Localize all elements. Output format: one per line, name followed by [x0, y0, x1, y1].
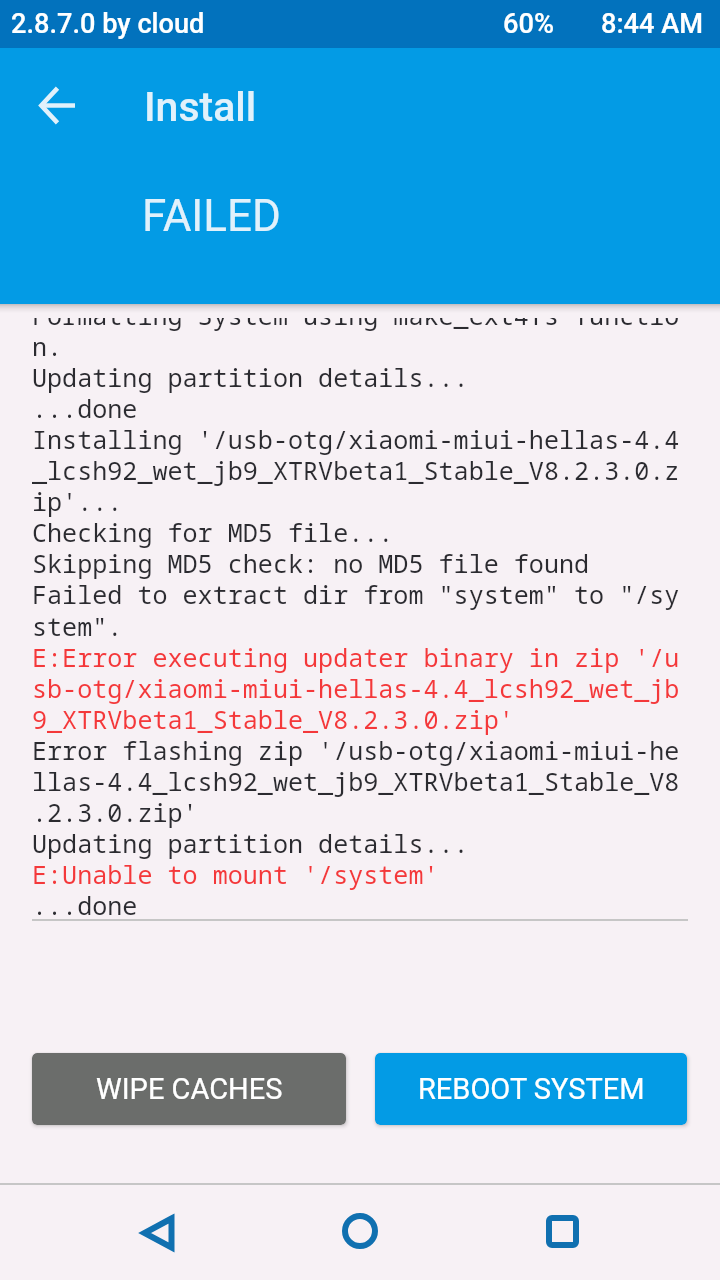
button[interactable]: Back: [110, 1185, 206, 1280]
staticText: ...done: [32, 391, 138, 425]
staticText: Error flashing zip '/usb-otg/xiaomi-miui…: [32, 733, 680, 767]
staticText: 60%: [503, 8, 554, 40]
staticText: ip'...: [32, 484, 123, 518]
staticText: Updating partition details...: [32, 360, 469, 394]
staticText: Install: [144, 83, 257, 131]
staticText: WIPE CACHES: [96, 1072, 283, 1106]
button[interactable]: Navigate up: [27, 75, 87, 135]
staticText: 9_XTRVbeta1_Stable_V8.2.3.0.zip': [32, 702, 514, 736]
staticText: n.: [32, 329, 63, 363]
button[interactable]: REBOOT SYSTEM: [375, 1053, 687, 1125]
staticText: FAILED: [142, 190, 281, 242]
staticText: Updating partition details...: [32, 826, 469, 860]
staticText: Installing '/usb-otg/xiaomi-miui-hellas-…: [32, 422, 680, 456]
staticText: 8:44 AM: [601, 8, 704, 40]
staticText: .2.3.0.zip': [32, 795, 198, 829]
staticText: Checking for MD5 file...: [32, 515, 394, 549]
staticText: sb-otg/xiaomi-miui-hellas-4.4_lcsh92_wet…: [32, 671, 680, 705]
staticText: REBOOT SYSTEM: [418, 1072, 645, 1106]
staticText: stem".: [32, 609, 123, 643]
staticText: llas-4.4_lcsh92_wet_jb9_XTRVbeta1_Stable…: [32, 764, 680, 798]
button[interactable]: Home: [312, 1183, 408, 1279]
staticText: E:Unable to mount '/system': [32, 857, 439, 891]
staticText: 2.8.7.0 by cloud: [11, 8, 205, 40]
staticText: Failed to extract dir from "system" to "…: [32, 577, 680, 611]
staticText: ...done: [32, 888, 138, 922]
staticText: E:Error executing updater binary in zip …: [32, 640, 680, 674]
staticText: Skipping MD5 check: no MD5 file found: [32, 546, 590, 580]
staticText: _lcsh92_wet_jb9_XTRVbeta1_Stable_V8.2.3.…: [32, 453, 680, 487]
button[interactable]: WIPE CACHES: [32, 1053, 346, 1125]
button[interactable]: Recent apps: [514, 1183, 610, 1279]
staticText: Formatting System using make_ext4fs func…: [32, 318, 680, 332]
